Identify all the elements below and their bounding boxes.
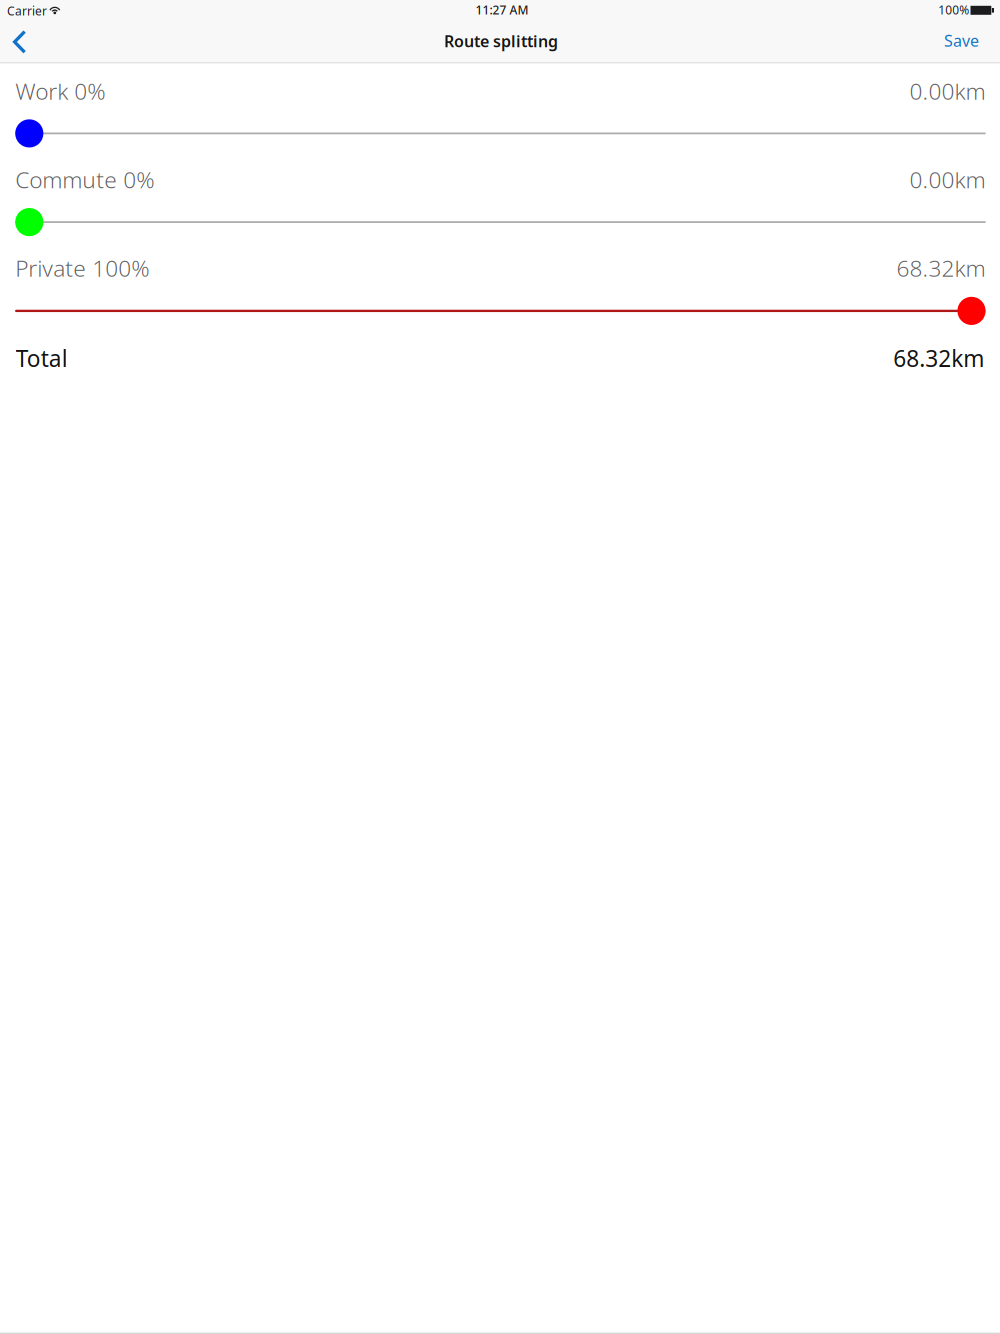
staticText: Work 0% [15, 76, 105, 106]
button[interactable]: Commute 0% [15, 208, 986, 236]
staticText: 68.32km [893, 343, 984, 373]
staticText: Route splitting [444, 30, 558, 52]
staticText: Carrier [7, 3, 47, 19]
button[interactable]: Work 0% [15, 119, 986, 147]
staticText: Commute 0% [15, 164, 154, 194]
staticText: 0.00km [910, 164, 986, 194]
staticText: 100% [938, 2, 969, 18]
staticText: Private 100% [15, 253, 149, 283]
staticText: 0.00km [910, 76, 986, 106]
staticText: 68.32km [897, 253, 986, 283]
button[interactable]: Back [0, 24, 46, 63]
staticText: Save [944, 30, 979, 51]
staticText: Total [16, 343, 68, 373]
button[interactable]: Save [928, 24, 990, 63]
staticText: 11:27 AM [476, 2, 529, 18]
button[interactable]: Private 100% [15, 297, 986, 325]
